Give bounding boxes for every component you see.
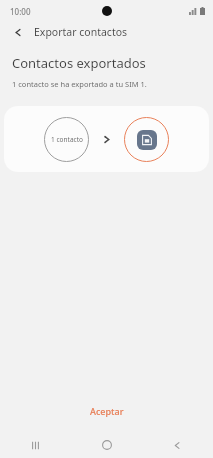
staticText: Aceptar (90, 405, 124, 417)
staticText: Exportar contactos (34, 25, 128, 39)
button[interactable]: Atrás (9, 23, 27, 41)
button[interactable]: Aceptar (0, 399, 213, 423)
staticText: Contactos exportados (12, 54, 146, 72)
button[interactable]: 1 contacto (44, 117, 89, 162)
staticText: 1 contacto se ha exportado a tu SIM 1. (12, 79, 147, 89)
staticText: 1 contacto (51, 135, 83, 144)
staticText: 10:00 (10, 6, 31, 17)
button[interactable]: Inicio (71, 432, 142, 458)
button[interactable]: SIM 1 (124, 117, 169, 162)
button[interactable]: Atrás (142, 432, 213, 458)
button[interactable]: Recientes (0, 432, 71, 458)
